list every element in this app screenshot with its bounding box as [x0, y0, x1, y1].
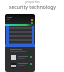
staticText: security technology — [9, 4, 56, 11]
staticText: properties — [25, 0, 40, 4]
